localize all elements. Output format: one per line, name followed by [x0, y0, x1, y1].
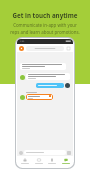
button[interactable] — [38, 85, 62, 86]
staticText: reps and learn about promotions. — [6, 29, 84, 35]
button[interactable] — [22, 64, 64, 69]
button[interactable]: Orders — [32, 156, 45, 166]
button[interactable]: Menu — [66, 46, 71, 51]
button[interactable] — [26, 46, 64, 51]
staticText: Communicate in-app with your — [6, 22, 84, 28]
button[interactable]: Chat — [59, 156, 72, 166]
button[interactable]: App logo — [19, 46, 24, 51]
button[interactable] — [24, 150, 66, 155]
button[interactable] — [28, 74, 68, 79]
button[interactable]: Contact avatar — [65, 83, 70, 88]
button[interactable] — [28, 95, 51, 99]
button[interactable]: Home — [18, 156, 31, 166]
button[interactable]: Contact avatar — [20, 95, 25, 100]
button[interactable]: Add attachment — [19, 151, 23, 155]
staticText: Get in touch anytime — [6, 11, 84, 19]
button[interactable]: Contact avatar — [20, 75, 25, 80]
button[interactable]: Cart — [45, 156, 58, 166]
